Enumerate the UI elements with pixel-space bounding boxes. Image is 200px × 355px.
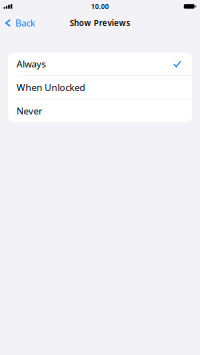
button[interactable]: Never <box>8 99 192 122</box>
staticText: Always <box>16 58 45 70</box>
button[interactable]: When Unlocked <box>8 76 192 99</box>
staticText: Show Previews <box>70 18 130 28</box>
staticText: When Unlocked <box>16 81 85 94</box>
staticText: Back <box>15 17 35 29</box>
button[interactable]: Selected <box>8 52 192 75</box>
button[interactable]: Back <box>0 16 39 29</box>
staticText: Never <box>16 105 42 117</box>
